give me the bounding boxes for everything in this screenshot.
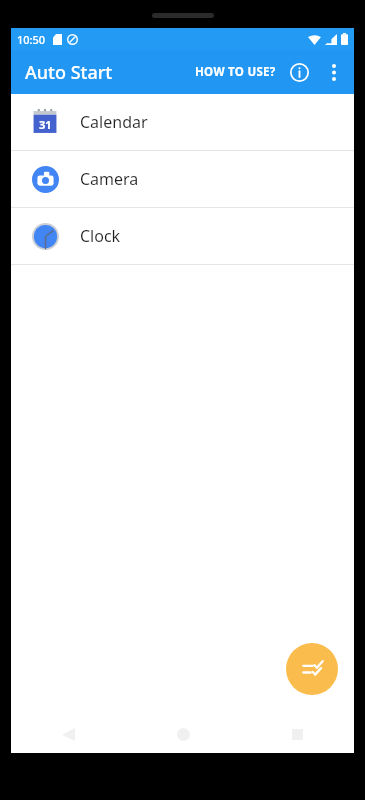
staticText: 10:50 bbox=[17, 32, 46, 47]
button[interactable]: Camera bbox=[11, 151, 354, 207]
staticText: Camera bbox=[80, 168, 139, 190]
staticText: Auto Start bbox=[25, 60, 113, 85]
button[interactable]: Select apps bbox=[286, 643, 338, 695]
button[interactable]: HOW TO USE? bbox=[190, 57, 281, 87]
button[interactable]: More options bbox=[317, 55, 351, 89]
staticText: HOW TO USE? bbox=[195, 64, 276, 80]
staticText: Clock bbox=[80, 225, 121, 247]
staticText: 31 bbox=[39, 117, 52, 132]
button[interactable]: 31 bbox=[11, 94, 354, 150]
button[interactable]: Clock bbox=[11, 208, 354, 264]
button[interactable]: Info bbox=[281, 54, 317, 90]
staticText: Calendar bbox=[80, 111, 148, 133]
